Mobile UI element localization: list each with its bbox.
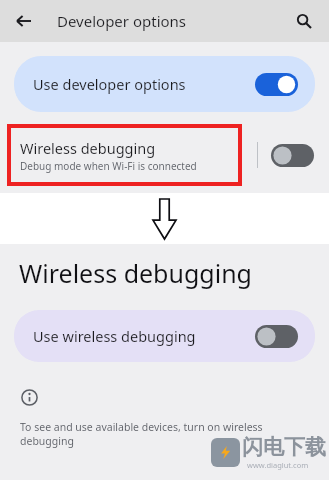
button[interactable]: Wireless debugging toggle <box>271 144 314 167</box>
staticText: Use developer options <box>33 74 255 94</box>
button[interactable]: Search <box>290 7 318 35</box>
staticText: www.diaglut.com <box>247 460 309 470</box>
button[interactable]: Back <box>9 6 39 36</box>
staticText: Developer options <box>57 11 187 31</box>
button[interactable]: Use wireless debugging <box>14 310 315 362</box>
button[interactable]: Use developer options <box>14 56 315 112</box>
button[interactable]: Wireless debugging <box>20 138 257 173</box>
staticText: Use wireless debugging <box>33 326 255 346</box>
staticText: Debug mode when Wi-Fi is connected <box>20 159 197 173</box>
staticText: 闪电下载 <box>242 434 326 460</box>
staticText: Wireless debugging <box>19 256 252 290</box>
staticText: To see and use available devices, turn o… <box>20 420 263 448</box>
staticText: Wireless debugging <box>20 138 156 158</box>
